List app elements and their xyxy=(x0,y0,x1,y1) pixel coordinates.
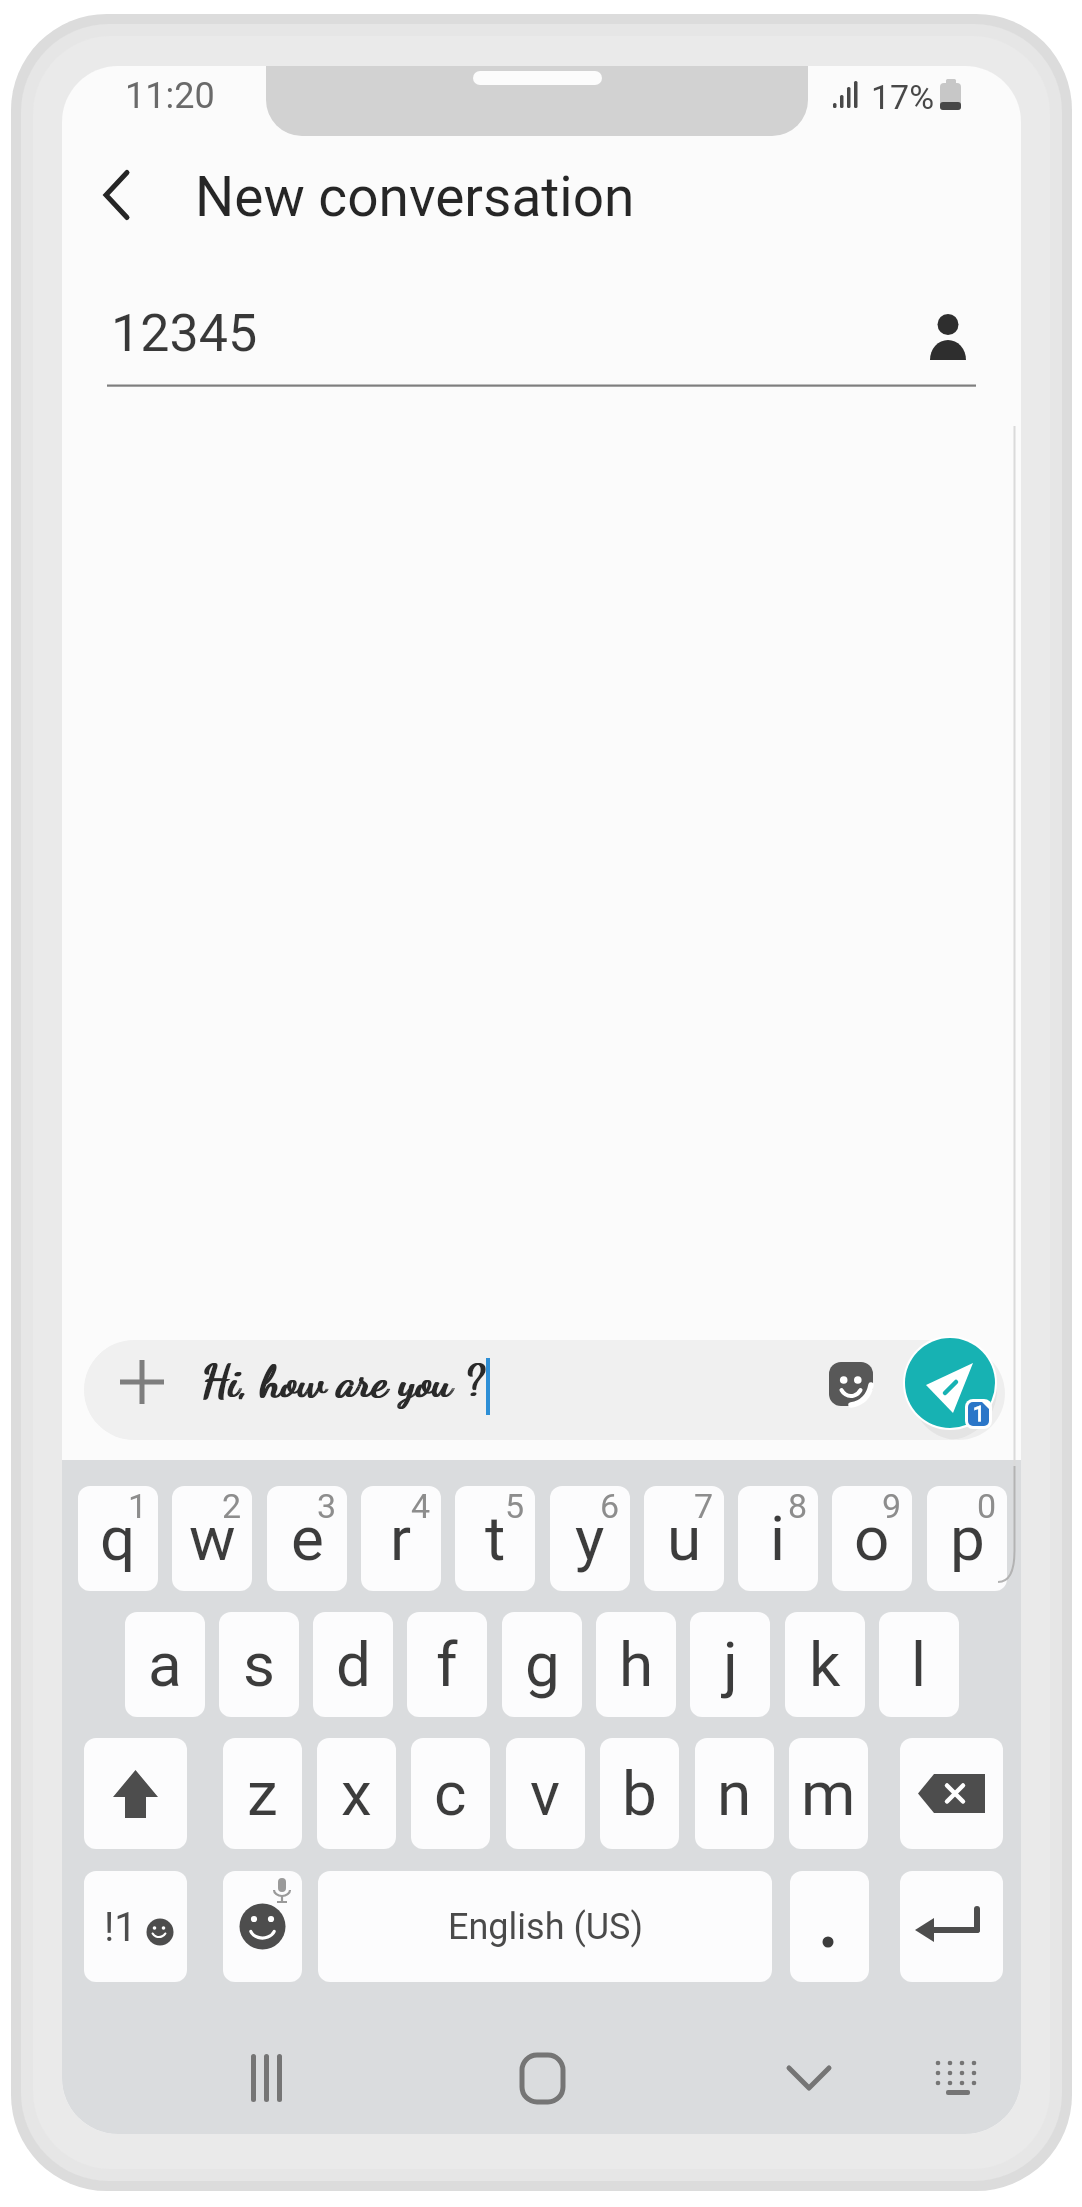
staticText: 5 xyxy=(505,1486,525,1526)
staticText: e xyxy=(291,1502,324,1575)
button[interactable] xyxy=(487,2041,597,2121)
button[interactable] xyxy=(102,306,982,390)
staticText: y xyxy=(575,1502,605,1575)
button[interactable]: g xyxy=(502,1612,582,1717)
button[interactable] xyxy=(905,1338,995,1428)
button[interactable] xyxy=(222,2041,332,2121)
button[interactable] xyxy=(900,1871,1003,1982)
staticText: v xyxy=(530,1757,561,1830)
button[interactable] xyxy=(790,1871,869,1982)
staticText: s xyxy=(243,1628,275,1701)
button[interactable]: h xyxy=(596,1612,676,1717)
button[interactable]: y xyxy=(550,1486,630,1591)
button[interactable]: n xyxy=(695,1738,774,1849)
button[interactable]: q xyxy=(78,1486,158,1591)
button[interactable]: English (US) xyxy=(318,1871,772,1982)
button[interactable]: u xyxy=(644,1486,724,1591)
staticText: w xyxy=(189,1502,236,1575)
button[interactable]: j xyxy=(690,1612,770,1717)
button[interactable]: f xyxy=(407,1612,487,1717)
button[interactable]: m xyxy=(789,1738,868,1849)
button[interactable]: x xyxy=(317,1738,396,1849)
staticText: q xyxy=(100,1502,136,1575)
staticText: z xyxy=(247,1757,278,1830)
button[interactable]: e xyxy=(267,1486,347,1591)
button[interactable] xyxy=(922,2041,1002,2121)
staticText: c xyxy=(434,1757,467,1830)
staticText: o xyxy=(854,1502,890,1575)
button[interactable]: r xyxy=(361,1486,441,1591)
staticText: l xyxy=(911,1628,927,1701)
staticText: d xyxy=(336,1628,371,1701)
button[interactable] xyxy=(84,1738,187,1849)
button[interactable]: t xyxy=(455,1486,535,1591)
staticText: 3 xyxy=(317,1486,337,1526)
button[interactable] xyxy=(84,1871,187,1982)
staticText: u xyxy=(667,1502,702,1575)
button[interactable]: p xyxy=(927,1486,1007,1591)
button[interactable]: l xyxy=(879,1612,959,1717)
button[interactable] xyxy=(829,1362,873,1406)
staticText: 4 xyxy=(411,1486,431,1526)
staticText: g xyxy=(525,1628,560,1701)
button[interactable] xyxy=(90,154,160,230)
button[interactable]: b xyxy=(600,1738,679,1849)
staticText: 7 xyxy=(694,1486,714,1526)
staticText: Hi, how are you ? xyxy=(200,1356,483,1409)
staticText: i xyxy=(770,1502,786,1575)
button[interactable]: a xyxy=(125,1612,205,1717)
staticText: !1 xyxy=(104,1904,137,1951)
button[interactable]: c xyxy=(411,1738,490,1849)
staticText: t xyxy=(485,1502,506,1575)
button[interactable] xyxy=(223,1871,302,1982)
staticText: 17% xyxy=(871,77,935,117)
button[interactable]: v xyxy=(506,1738,585,1849)
staticText: New conversation xyxy=(195,165,635,229)
staticText: 2 xyxy=(222,1486,242,1526)
staticText: j xyxy=(723,1628,738,1701)
staticText: English (US) xyxy=(448,1906,643,1948)
staticText: 0 xyxy=(977,1486,997,1526)
button[interactable]: s xyxy=(219,1612,299,1717)
button[interactable] xyxy=(754,2041,864,2121)
button[interactable] xyxy=(84,1340,997,1440)
staticText: 1 xyxy=(973,1402,985,1426)
button[interactable]: o xyxy=(832,1486,912,1591)
staticText: Hi, how are you ? xyxy=(202,1356,485,1409)
staticText: 1 xyxy=(128,1486,148,1526)
button[interactable]: d xyxy=(313,1612,393,1717)
staticText: 9 xyxy=(882,1486,902,1526)
button[interactable] xyxy=(900,1738,1003,1849)
staticText: h xyxy=(619,1628,654,1701)
staticText: 8 xyxy=(788,1486,808,1526)
staticText: k xyxy=(809,1628,841,1701)
staticText: p xyxy=(950,1502,985,1575)
staticText: 12345 xyxy=(111,303,258,364)
button[interactable]: w xyxy=(172,1486,252,1591)
staticText: a xyxy=(148,1628,182,1701)
staticText: 6 xyxy=(600,1486,620,1526)
staticText: n xyxy=(717,1757,752,1830)
staticText: m xyxy=(801,1757,856,1830)
staticText: b xyxy=(622,1757,657,1830)
staticText: x xyxy=(341,1757,372,1830)
staticText: Hi, how are you ? xyxy=(201,1356,484,1409)
button[interactable]: i xyxy=(738,1486,818,1591)
button[interactable]: k xyxy=(785,1612,865,1717)
staticText: f xyxy=(436,1628,458,1701)
staticText: r xyxy=(390,1502,412,1575)
staticText: 11:20 xyxy=(125,75,215,117)
button[interactable]: z xyxy=(223,1738,302,1849)
